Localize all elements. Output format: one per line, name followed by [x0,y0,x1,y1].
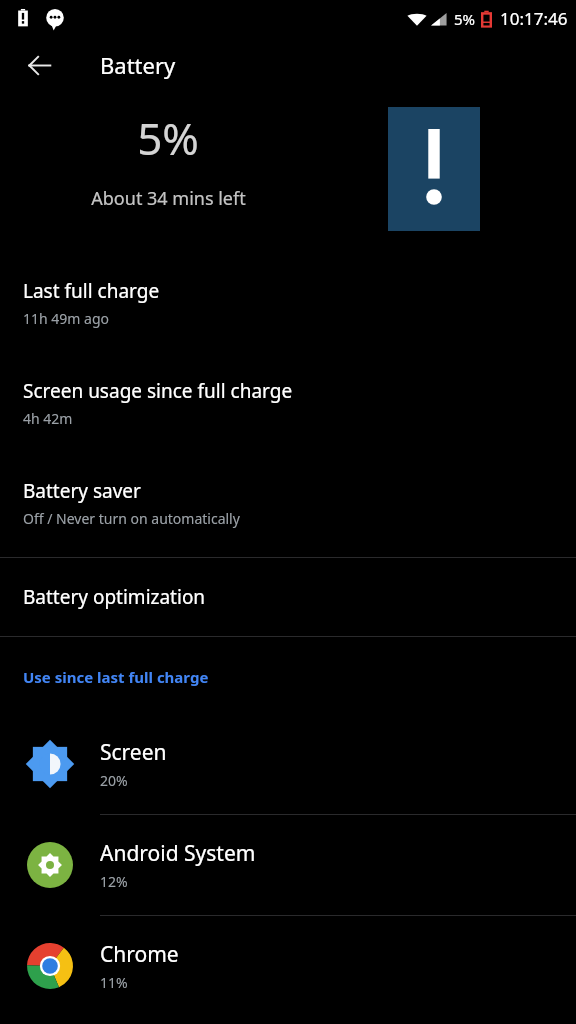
button[interactable]: Battery usage graph [388,107,480,231]
button[interactable]: Chrome [0,916,576,1016]
staticText: Screen usage since full charge [23,378,293,404]
staticText: 5% [454,9,476,29]
staticText: 11h 49m ago [23,309,109,328]
staticText: Off / Never turn on automatically [23,509,240,528]
button[interactable]: Last full charge [0,278,576,328]
staticText: 20% [100,771,128,790]
staticText: Screen [100,738,167,767]
button[interactable]: Screen usage since full charge [0,378,576,428]
staticText: 12% [100,872,128,891]
staticText: 4h 42m [23,409,73,428]
staticText: 11% [100,973,128,992]
button[interactable]: Android System [0,815,576,915]
button[interactable]: Use since last full charge [0,667,209,689]
button[interactable]: Battery saver [0,478,576,528]
button[interactable]: Screen [0,714,576,814]
staticText: 10:17:46 [500,7,568,30]
staticText: 5% [137,108,199,168]
staticText: About 34 mins left [91,186,246,211]
staticText: Battery [100,50,176,80]
staticText: Chrome [100,940,179,969]
button[interactable]: Battery optimization [0,558,576,636]
button[interactable]: Back [14,40,64,90]
staticText: Android System [100,839,256,868]
staticText: Battery optimization [23,584,206,610]
staticText: Battery saver [23,478,141,504]
staticText: Last full charge [23,278,160,304]
